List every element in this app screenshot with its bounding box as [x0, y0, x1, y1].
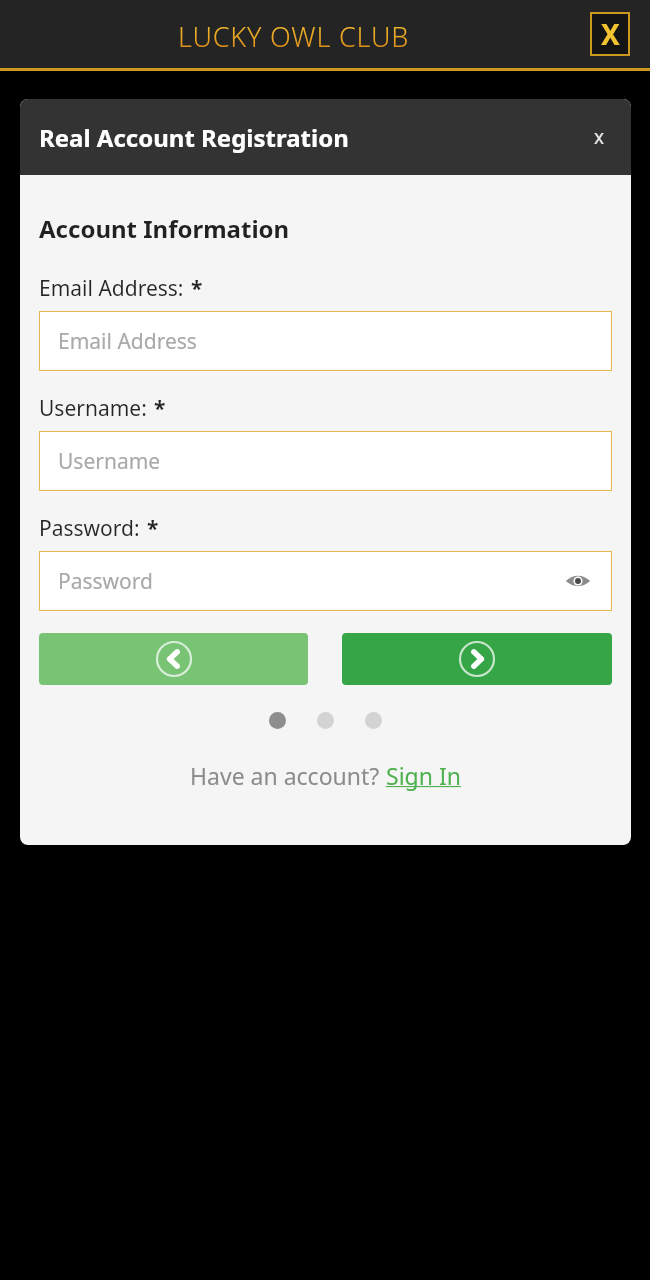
- staticText: Real Account Registration: [39, 121, 349, 154]
- staticText: LUCKY OWL CLUB: [178, 18, 410, 55]
- button[interactable]: Step 2: [317, 712, 334, 729]
- staticText: Password:: [39, 514, 140, 543]
- button[interactable]: Previous: [39, 633, 308, 685]
- button[interactable]: Show password: [561, 564, 595, 598]
- staticText: x: [594, 124, 605, 150]
- staticText: X: [601, 15, 620, 53]
- staticText: Username:: [39, 394, 147, 423]
- staticText: Email Address: [58, 327, 197, 356]
- staticText: *: [147, 514, 159, 543]
- button[interactable]: Email Address: [39, 311, 612, 371]
- staticText: Password: [58, 567, 153, 596]
- staticText: Have an account?: [190, 760, 386, 791]
- button[interactable]: Close: [590, 12, 630, 56]
- button[interactable]: Step 3: [365, 712, 382, 729]
- button[interactable]: Next: [342, 633, 612, 685]
- staticText: *: [191, 274, 203, 303]
- staticText: Sign In: [386, 760, 461, 791]
- staticText: Email Address:: [39, 274, 184, 303]
- button[interactable]: Sign In: [386, 760, 461, 791]
- button[interactable]: Username: [39, 431, 612, 491]
- staticText: Account Information: [39, 212, 290, 245]
- button[interactable]: Step 1: [269, 712, 286, 729]
- staticText: Username: [58, 447, 161, 476]
- button[interactable]: Close dialog: [583, 121, 615, 153]
- button[interactable]: Password: [39, 551, 612, 611]
- staticText: *: [154, 394, 166, 423]
